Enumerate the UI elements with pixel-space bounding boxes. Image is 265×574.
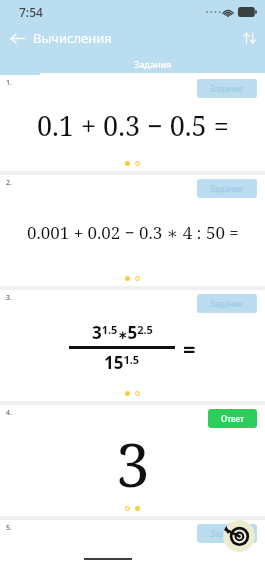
staticText: Задание xyxy=(210,83,244,94)
button[interactable]: Задание xyxy=(197,524,257,543)
staticText: 31.5∗52.5 xyxy=(92,321,153,344)
staticText: 7:54 xyxy=(19,4,43,20)
staticText: Задания xyxy=(134,58,172,70)
button[interactable]: Задания xyxy=(40,55,265,75)
staticText: = xyxy=(183,333,196,363)
staticText: 1. xyxy=(6,78,12,88)
staticText: Задание xyxy=(210,183,244,194)
staticText: Задание xyxy=(210,528,244,539)
staticText: 151.5 xyxy=(104,351,140,374)
button[interactable]: Ответ xyxy=(208,409,257,428)
button[interactable]: 5. xyxy=(0,520,265,574)
button[interactable]: 1. xyxy=(0,75,265,171)
button[interactable]: Back xyxy=(0,27,31,50)
staticText: 3 xyxy=(116,423,150,502)
button[interactable]: Задание xyxy=(197,179,257,198)
staticText: 2. xyxy=(6,178,12,188)
button[interactable]: Задание xyxy=(197,79,257,98)
button[interactable]: 3. xyxy=(0,290,265,401)
staticText: 5. xyxy=(6,523,12,533)
staticText: 3. xyxy=(6,293,12,303)
button[interactable]: 4. xyxy=(0,405,265,516)
button[interactable]: Задание xyxy=(197,294,257,313)
staticText: Ответ xyxy=(221,413,244,424)
button[interactable]: 2. xyxy=(0,175,265,286)
button[interactable]: Sort xyxy=(234,24,265,52)
staticText: Вычисления xyxy=(33,29,112,47)
button[interactable]: Practice target xyxy=(223,520,255,552)
staticText: 0.001 + 0.02 − 0.3 ∗ 4 : 50 = xyxy=(27,221,239,244)
staticText: 0.1 + 0.3 − 0.5 = xyxy=(37,107,229,144)
staticText: 4. xyxy=(6,408,12,418)
staticText: Задание xyxy=(210,298,244,309)
